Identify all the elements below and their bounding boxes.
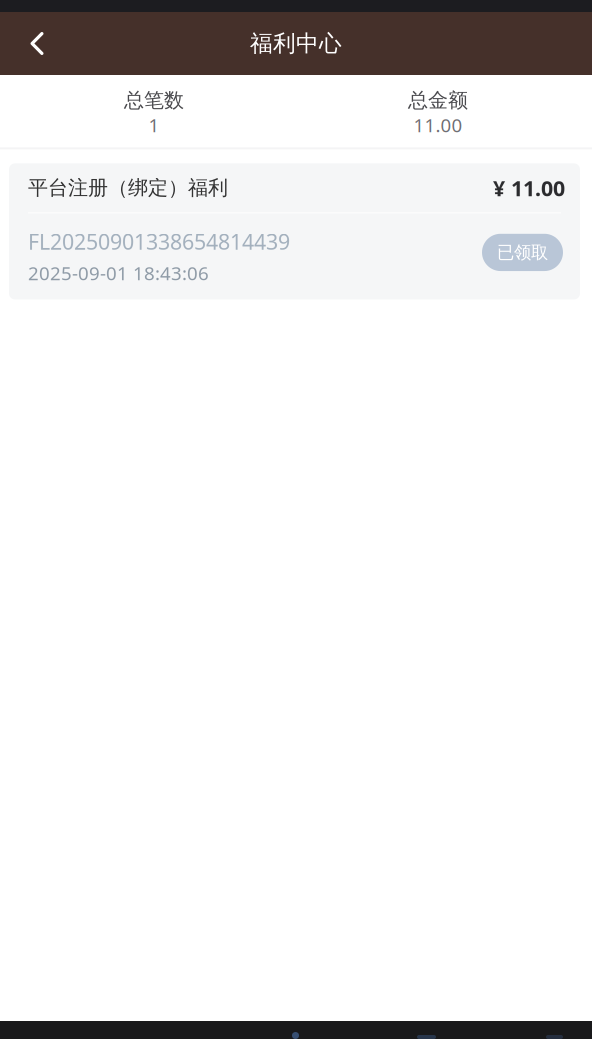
staticText: ¥ 11.00 [493, 174, 565, 202]
staticText: 2025-09-01 18:43:06 [28, 261, 209, 285]
staticText: 已领取 [497, 242, 548, 263]
staticText: 11.00 [413, 113, 462, 137]
button[interactable]: 返回 [0, 12, 74, 75]
button[interactable]: 平台注册（绑定）福利 [9, 163, 580, 299]
staticText: 福利中心 [250, 30, 342, 57]
staticText: 平台注册（绑定）福利 [28, 176, 228, 200]
staticText: 总金额 [408, 88, 468, 113]
staticText: 总笔数 [124, 88, 184, 113]
staticText: FL20250901338654814439 [28, 227, 290, 256]
staticText: 1 [148, 113, 159, 137]
